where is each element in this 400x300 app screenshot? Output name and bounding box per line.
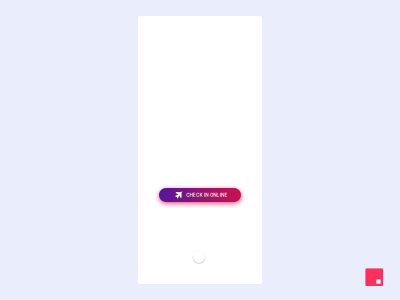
staticText: CHECK IN ONLINE (186, 192, 227, 198)
button[interactable]: CHECK IN ONLINE (159, 188, 241, 202)
